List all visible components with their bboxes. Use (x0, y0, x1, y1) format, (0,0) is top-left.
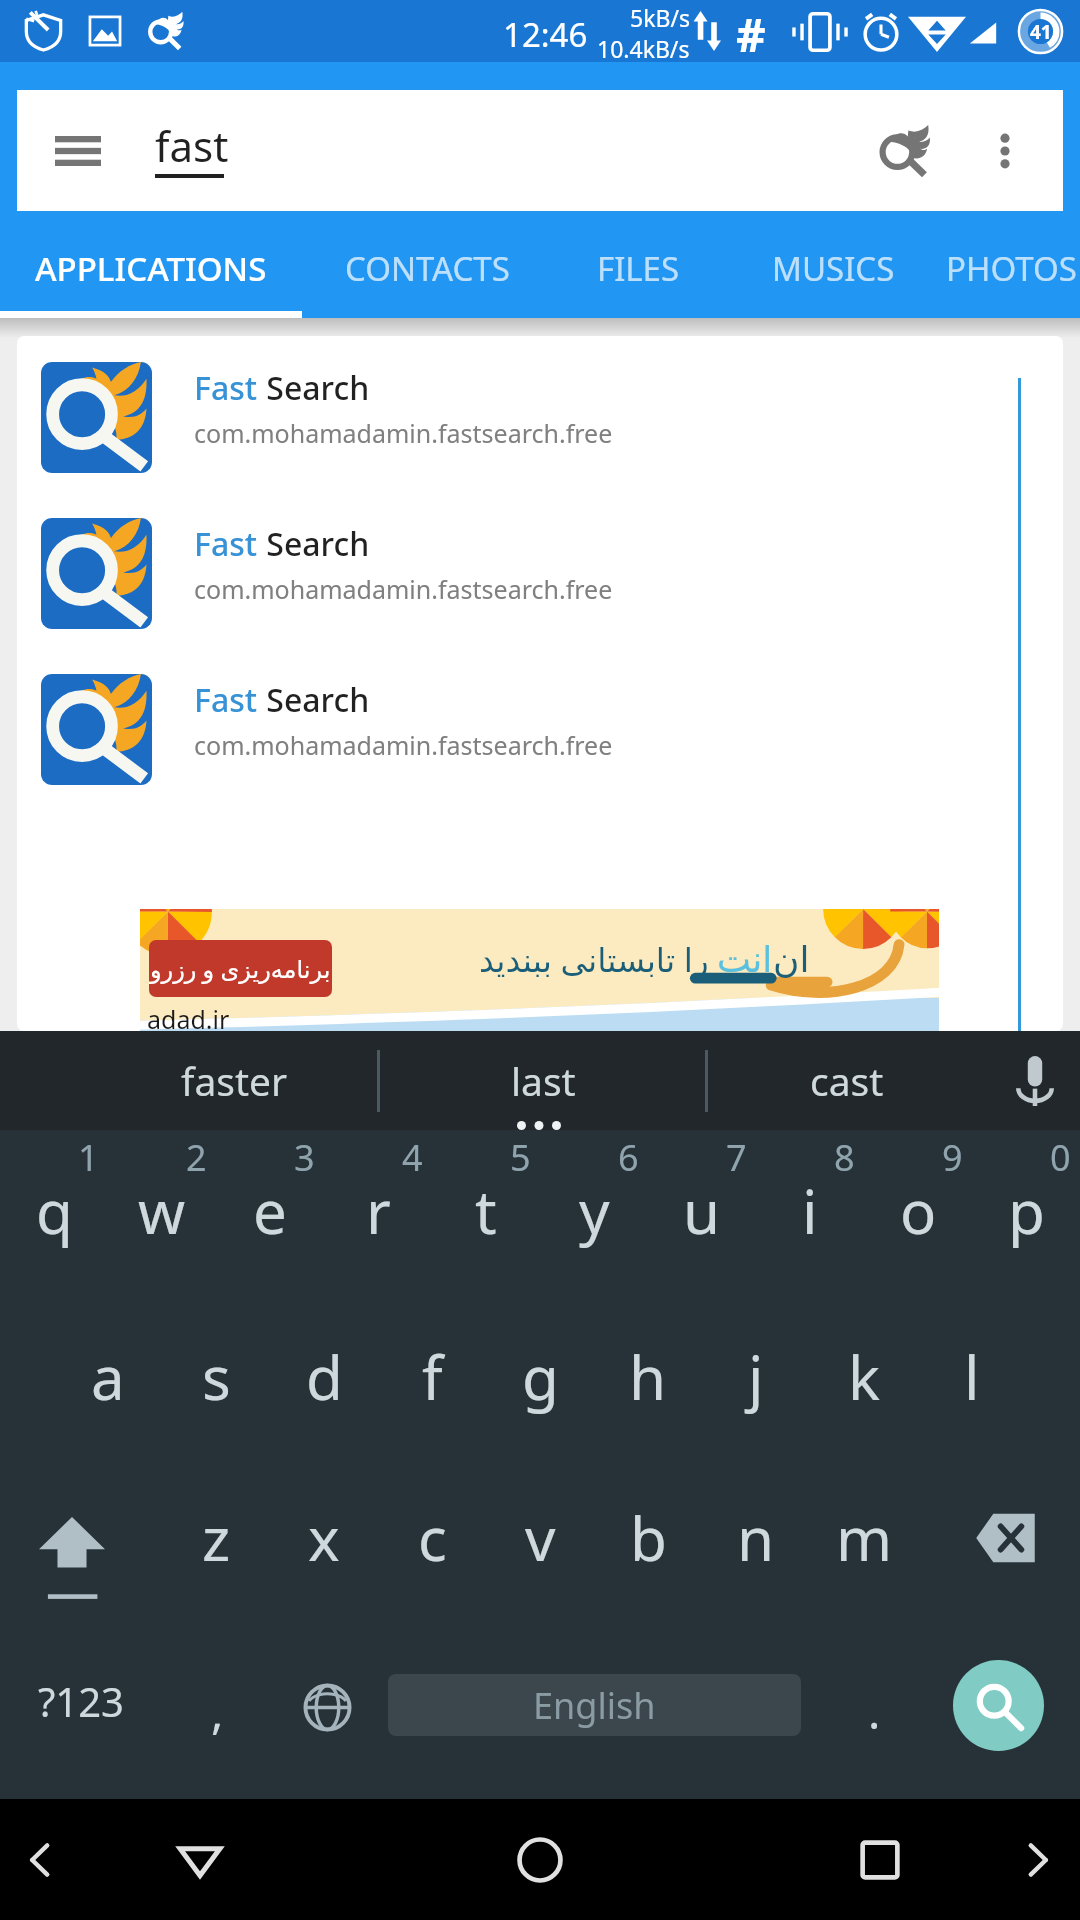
staticText: 0 (1050, 1133, 1071, 1182)
staticText: s (202, 1336, 231, 1418)
staticText: Fast (194, 522, 258, 566)
staticText: 41 (1030, 19, 1052, 45)
button[interactable]: FILES (552, 220, 724, 318)
button[interactable]: Previous (0, 1799, 96, 1920)
staticText: g (522, 1336, 559, 1418)
button[interactable]: cast (708, 1031, 980, 1130)
button[interactable]: h (594, 1293, 702, 1460)
staticText: adad.ir (147, 1002, 230, 1031)
staticText: APPLICATIONS (35, 246, 267, 291)
staticText: w (138, 1170, 186, 1252)
button[interactable]: n (702, 1454, 810, 1621)
button[interactable]: c (378, 1454, 486, 1621)
staticText: d (306, 1336, 343, 1418)
staticText: last (511, 1054, 576, 1107)
button[interactable]: 0 (972, 1130, 1080, 1297)
staticText: l (964, 1336, 980, 1418)
staticText: p (1008, 1170, 1045, 1252)
button[interactable]: f (378, 1293, 486, 1460)
button[interactable]: Voice input (980, 1031, 1080, 1130)
staticText: k (848, 1336, 881, 1418)
staticText: u (683, 1170, 721, 1252)
staticText: j (748, 1336, 764, 1418)
button[interactable]: Search (929, 1617, 1080, 1785)
button[interactable]: Search (865, 111, 945, 191)
staticText: 12:46 (503, 12, 588, 57)
staticText: b (630, 1497, 667, 1579)
button[interactable]: 8 (756, 1130, 864, 1297)
staticText: 1 (78, 1133, 99, 1182)
button[interactable]: Next (982, 1799, 1080, 1920)
staticText: x (308, 1497, 340, 1579)
button[interactable]: More options (969, 115, 1041, 187)
button[interactable]: Menu (17, 90, 1063, 211)
staticText: 10.4kB/s (597, 33, 690, 64)
button[interactable]: 5 (432, 1130, 540, 1297)
button[interactable]: 6 (540, 1130, 648, 1297)
button[interactable]: l (918, 1293, 1026, 1460)
button[interactable]: z (162, 1454, 270, 1621)
button[interactable]: Fast (17, 495, 1063, 651)
staticText: 8 (834, 1133, 855, 1182)
button[interactable]: MUSICS (724, 220, 942, 318)
button[interactable]: last (380, 1031, 705, 1130)
button[interactable]: Shift (0, 1454, 162, 1621)
button[interactable]: . (819, 1617, 929, 1785)
staticText: Fast (194, 366, 258, 410)
staticText: i (802, 1170, 818, 1252)
staticText: t (475, 1170, 497, 1252)
button[interactable]: 2 (108, 1130, 216, 1297)
button[interactable]: 3 (216, 1130, 324, 1297)
button[interactable]: j (702, 1293, 810, 1460)
button[interactable]: 4 (324, 1130, 432, 1297)
button[interactable]: ?123 (0, 1617, 162, 1785)
button[interactable]: a (54, 1293, 162, 1460)
staticText: r (366, 1170, 391, 1252)
staticText: Fast (194, 678, 258, 722)
button[interactable]: English (388, 1674, 801, 1736)
staticText: y (579, 1170, 610, 1252)
staticText: q (36, 1170, 73, 1252)
button[interactable]: Fast (17, 651, 1063, 807)
button[interactable]: , (162, 1617, 272, 1785)
button[interactable]: Recents (800, 1799, 960, 1920)
button[interactable]: 1 (0, 1130, 108, 1297)
staticText: انت (717, 939, 773, 981)
staticText: CONTACTS (345, 246, 510, 291)
button[interactable]: g (486, 1293, 594, 1460)
button[interactable]: Backspace (918, 1454, 1080, 1621)
button[interactable]: d (270, 1293, 378, 1460)
button[interactable]: 7 (648, 1130, 756, 1297)
button[interactable]: faster (0, 1031, 377, 1130)
button[interactable]: k (810, 1293, 918, 1460)
staticText: Search (258, 678, 370, 722)
button[interactable]: b (594, 1454, 702, 1621)
button[interactable]: 9 (864, 1130, 972, 1297)
staticText: English (533, 1681, 656, 1730)
staticText: com.mohamadamin.fastsearch.free (194, 572, 613, 606)
staticText: com.mohamadamin.fastsearch.free (194, 728, 613, 762)
button[interactable]: Menu (44, 117, 112, 185)
button[interactable]: Fast (17, 339, 1063, 495)
staticText: PHOTOS (946, 246, 1077, 291)
button[interactable]: x (270, 1454, 378, 1621)
button[interactable]: Home (460, 1799, 620, 1920)
staticText: c (418, 1497, 447, 1579)
button[interactable]: m (810, 1454, 918, 1621)
staticText: 4 (402, 1133, 423, 1182)
button[interactable]: APPLICATIONS (0, 220, 302, 318)
staticText: f (422, 1336, 443, 1418)
button[interactable]: CONTACTS (302, 220, 552, 318)
button[interactable]: v (486, 1454, 594, 1621)
button[interactable]: PHOTOS (942, 220, 1080, 318)
button[interactable]: Change language (272, 1617, 382, 1785)
button[interactable]: برنامه‌ریزی و رزرو (140, 909, 939, 1031)
button[interactable]: Hide keyboard (120, 1799, 280, 1920)
staticText: e (253, 1170, 287, 1252)
staticText: a (91, 1336, 125, 1418)
staticText: برنامه‌ریزی و رزرو (150, 952, 331, 985)
staticText: n (737, 1497, 775, 1579)
button[interactable]: s (162, 1293, 270, 1460)
staticText: h (629, 1336, 667, 1418)
staticText: 7 (726, 1133, 747, 1182)
